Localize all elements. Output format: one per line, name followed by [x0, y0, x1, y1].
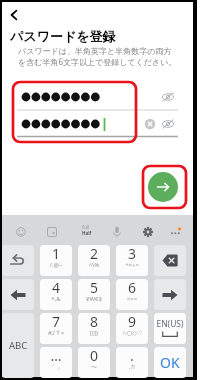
staticText: 「 」	[40, 363, 72, 372]
button[interactable]: 5	[78, 279, 110, 310]
button[interactable]: Show password	[157, 86, 179, 108]
staticText: #♪↑×	[40, 329, 72, 338]
staticText: +×÷=	[116, 261, 148, 270]
staticText: 8	[78, 313, 110, 329]
button[interactable]: Show password	[157, 113, 179, 135]
staticText: ,?!	[116, 363, 148, 372]
staticText: ABC	[9, 339, 28, 352]
button[interactable]: Next	[148, 172, 178, 202]
staticText: ☆○◇♡	[116, 329, 148, 338]
staticText: 7	[40, 313, 72, 329]
staticText: ¥W€$	[78, 295, 110, 304]
button[interactable]: …	[40, 347, 72, 378]
button[interactable]: 4	[40, 279, 72, 310]
staticText: *,&	[40, 295, 72, 304]
button[interactable]: Right	[154, 279, 186, 310]
staticText: 0	[78, 347, 110, 363]
button[interactable]: Back	[2, 4, 24, 26]
button[interactable]: Left	[2, 279, 34, 310]
button[interactable]: 2	[78, 245, 110, 276]
button[interactable]: Clear text	[139, 113, 161, 135]
staticText: [{]}	[78, 329, 110, 338]
button[interactable]: 7	[40, 313, 72, 344]
button[interactable]: Undo	[2, 245, 34, 276]
staticText: を含む半角6文字以上で登録してください。	[18, 56, 177, 67]
staticText: /.@~	[40, 261, 72, 270]
staticText: 4	[40, 279, 72, 295]
staticText: …	[40, 347, 72, 363]
staticText: .	[116, 347, 148, 363]
button[interactable]: 3	[116, 245, 148, 276]
staticText: 2	[78, 245, 110, 261]
button[interactable]: OK	[154, 347, 186, 378]
button[interactable]: .	[116, 347, 148, 378]
staticText: ^\%	[78, 261, 110, 270]
staticText: EN(US)	[154, 318, 186, 330]
staticText: 5	[78, 279, 110, 295]
button[interactable]: ABC	[2, 313, 34, 378]
button[interactable]: 1	[40, 245, 72, 276]
staticText: パスワードは、半角英字と半角数字の両方	[18, 46, 172, 56]
button[interactable]: 6	[116, 279, 148, 310]
staticText: 〜	[78, 363, 110, 372]
button[interactable]: Backspace	[154, 245, 186, 276]
staticText: <>=	[116, 295, 148, 304]
staticText: 1	[40, 245, 72, 261]
button[interactable]: Space	[154, 313, 186, 344]
staticText: Full	[82, 224, 90, 230]
staticText: OK	[160, 353, 180, 372]
staticText: Half	[82, 230, 92, 236]
button[interactable]: 0	[78, 347, 110, 378]
button[interactable]: 9	[116, 313, 148, 344]
staticText: パスワードを登録	[10, 28, 116, 44]
staticText: 6	[116, 279, 148, 295]
button[interactable]: 8	[78, 313, 110, 344]
staticText: 3	[116, 245, 148, 261]
staticText: 9	[116, 313, 148, 329]
